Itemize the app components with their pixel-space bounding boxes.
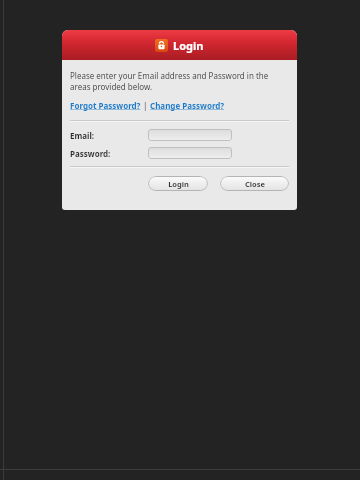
staticText: Password:: [70, 148, 111, 159]
staticText: Please enter your Email address and Pass…: [70, 70, 289, 92]
staticText: |: [141, 100, 150, 111]
staticText: Login: [173, 38, 204, 53]
button[interactable]: [148, 129, 232, 141]
button[interactable]: Change Password?: [150, 100, 225, 111]
staticText: Close: [245, 179, 265, 189]
staticText: Email:: [70, 130, 95, 141]
staticText: Login: [168, 179, 189, 189]
button[interactable]: Close: [220, 176, 289, 191]
button[interactable]: [148, 147, 232, 159]
button[interactable]: Login: [148, 176, 208, 191]
other: Secure login: [155, 39, 168, 52]
button[interactable]: Forgot Password?: [70, 100, 141, 111]
